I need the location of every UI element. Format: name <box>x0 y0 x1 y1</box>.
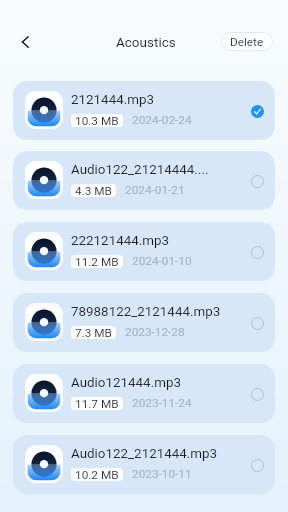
staticText: 2023-12-28 <box>125 325 185 339</box>
button[interactable]: Select <box>247 313 267 333</box>
button[interactable]: Selected <box>247 101 267 121</box>
button[interactable]: Select <box>247 384 267 404</box>
staticText: 222121444.mp3 <box>71 233 170 249</box>
staticText: 2024-01-21 <box>125 183 185 197</box>
staticText: Acoustics <box>116 34 176 50</box>
staticText: 11.7 MB <box>75 397 119 410</box>
staticText: 10.3 MB <box>75 114 119 127</box>
staticText: 11.2 MB <box>75 255 119 268</box>
button[interactable]: 2121444.mp3 <box>13 81 275 140</box>
button[interactable]: Audio122_21214444.... <box>13 151 275 210</box>
button[interactable]: 222121444.mp3 <box>13 222 275 281</box>
staticText: 2023-11-24 <box>132 396 192 410</box>
button[interactable]: Select <box>247 171 267 191</box>
staticText: 2024-01-10 <box>132 254 192 268</box>
button[interactable]: Audio121444.mp3 <box>13 364 275 423</box>
staticText: Delete <box>230 35 264 49</box>
button[interactable]: Select <box>247 242 267 262</box>
staticText: 4.3 MB <box>75 184 112 197</box>
staticText: 78988122_2121444.mp3 <box>71 304 221 320</box>
staticText: Audio121444.mp3 <box>71 375 181 391</box>
staticText: 2121444.mp3 <box>71 92 154 108</box>
staticText: 2024-02-24 <box>132 113 192 127</box>
button[interactable]: Audio122_2121444.mp3 <box>13 435 275 494</box>
button[interactable]: Select <box>247 455 267 475</box>
button[interactable]: Back <box>8 25 41 58</box>
staticText: 2023-10-11 <box>132 467 192 481</box>
staticText: Audio122_21214444.... <box>71 162 209 178</box>
staticText: 10.2 MB <box>75 468 119 481</box>
button[interactable]: Delete <box>221 32 273 51</box>
staticText: 7.3 MB <box>75 326 112 339</box>
button[interactable]: 78988122_2121444.mp3 <box>13 293 275 352</box>
staticText: Audio122_2121444.mp3 <box>71 446 218 462</box>
